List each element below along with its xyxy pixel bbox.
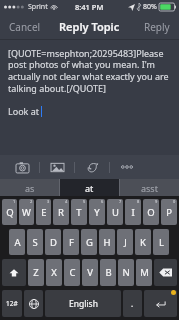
button[interactable]: R bbox=[53, 199, 69, 225]
staticText: 8 bbox=[137, 199, 140, 204]
button[interactable]: Photo library bbox=[45, 155, 69, 179]
button[interactable]: Y bbox=[89, 199, 105, 225]
staticText: B bbox=[105, 266, 112, 279]
staticText: R bbox=[58, 206, 64, 219]
staticText: 9 bbox=[155, 199, 158, 204]
staticText: Cancel bbox=[9, 20, 41, 34]
staticText: 12# bbox=[6, 299, 18, 308]
button[interactable]: T bbox=[71, 199, 87, 225]
button[interactable]: Cancel bbox=[0, 16, 50, 38]
button[interactable]: G bbox=[81, 229, 97, 255]
button[interactable]: E bbox=[36, 199, 51, 225]
other: Shift bbox=[9, 268, 19, 278]
staticText: Reply Topic bbox=[59, 19, 120, 34]
button[interactable]: X bbox=[46, 259, 62, 286]
button[interactable]: at bbox=[60, 179, 119, 196]
button[interactable]: D bbox=[45, 229, 61, 255]
button[interactable]: . bbox=[123, 290, 142, 317]
staticText: Z bbox=[33, 266, 39, 279]
staticText: Reply bbox=[144, 20, 170, 34]
button[interactable]: W bbox=[19, 199, 34, 225]
button[interactable]: B bbox=[100, 259, 116, 286]
button[interactable]: Twitter bbox=[80, 155, 104, 179]
other: Change keyboard language bbox=[29, 299, 39, 309]
staticText: 80% bbox=[143, 2, 157, 12]
staticText: G bbox=[86, 236, 93, 249]
button[interactable]: H bbox=[99, 229, 115, 255]
staticText: F bbox=[69, 236, 74, 249]
button[interactable]: Camera bbox=[10, 155, 34, 179]
staticText: 7 bbox=[119, 199, 122, 204]
staticText: asst bbox=[141, 182, 158, 194]
staticText: V bbox=[87, 266, 93, 279]
staticText: Look at bbox=[8, 105, 40, 117]
button[interactable]: I bbox=[125, 199, 141, 225]
staticText: H bbox=[103, 236, 111, 249]
staticText: S bbox=[32, 236, 38, 249]
button[interactable]: J bbox=[117, 229, 133, 255]
staticText: N bbox=[122, 266, 130, 279]
staticText: J bbox=[124, 236, 127, 249]
button[interactable]: English bbox=[45, 290, 121, 317]
staticText: 2 bbox=[30, 199, 33, 204]
staticText: as bbox=[25, 182, 35, 194]
staticText: M bbox=[140, 266, 149, 279]
staticText: 8:41 PM bbox=[75, 2, 104, 12]
button[interactable]: U bbox=[107, 199, 123, 225]
button[interactable]: A bbox=[9, 229, 25, 255]
button[interactable]: Z bbox=[28, 259, 44, 286]
button[interactable]: N bbox=[118, 259, 134, 286]
staticText: O bbox=[147, 206, 155, 219]
button[interactable]: Change keyboard language bbox=[24, 290, 43, 317]
button[interactable]: P bbox=[161, 199, 177, 225]
other: Return bbox=[155, 300, 166, 308]
staticText: 1 bbox=[13, 199, 16, 204]
staticText: T bbox=[76, 206, 82, 219]
button[interactable]: L bbox=[153, 229, 169, 255]
staticText: 3 bbox=[47, 199, 50, 204]
staticText: [QUOTE=msephton;20295483]Please post pho… bbox=[8, 47, 171, 95]
button[interactable]: Shift bbox=[2, 259, 26, 286]
button[interactable]: M bbox=[136, 259, 152, 286]
button[interactable]: K bbox=[135, 229, 151, 255]
staticText: 4 bbox=[65, 199, 68, 204]
button[interactable]: as bbox=[0, 179, 59, 196]
button[interactable]: S bbox=[27, 229, 43, 255]
staticText: L bbox=[159, 236, 164, 249]
other: Backspace bbox=[159, 268, 172, 277]
button[interactable]: V bbox=[82, 259, 98, 286]
button[interactable]: 12# bbox=[2, 290, 22, 317]
button[interactable]: Q bbox=[2, 199, 17, 225]
staticText: I bbox=[131, 206, 135, 219]
staticText: Sprint bbox=[28, 2, 48, 12]
staticText: 6 bbox=[101, 199, 104, 204]
staticText: P bbox=[166, 206, 172, 219]
staticText: X bbox=[51, 266, 57, 279]
staticText: 5 bbox=[83, 199, 86, 204]
button[interactable]: Reply bbox=[135, 16, 179, 38]
staticText: W bbox=[22, 206, 31, 219]
staticText: U bbox=[112, 206, 119, 219]
staticText: A bbox=[14, 236, 21, 249]
button[interactable]: asst bbox=[120, 179, 179, 196]
staticText: K bbox=[140, 236, 146, 249]
button[interactable]: Backspace bbox=[154, 259, 177, 286]
button[interactable]: O bbox=[143, 199, 159, 225]
staticText: Y bbox=[94, 206, 100, 219]
staticText: Q bbox=[6, 206, 14, 219]
staticText: English bbox=[69, 298, 98, 310]
button[interactable]: C bbox=[64, 259, 80, 286]
staticText: at bbox=[85, 182, 94, 194]
button[interactable]: F bbox=[63, 229, 79, 255]
staticText: 0 bbox=[173, 199, 176, 204]
staticText: E bbox=[41, 206, 47, 219]
staticText: . bbox=[131, 298, 134, 309]
button[interactable]: Return bbox=[144, 290, 177, 317]
button[interactable]: More options bbox=[115, 155, 139, 179]
staticText: D bbox=[50, 236, 57, 249]
staticText: C bbox=[69, 266, 76, 279]
